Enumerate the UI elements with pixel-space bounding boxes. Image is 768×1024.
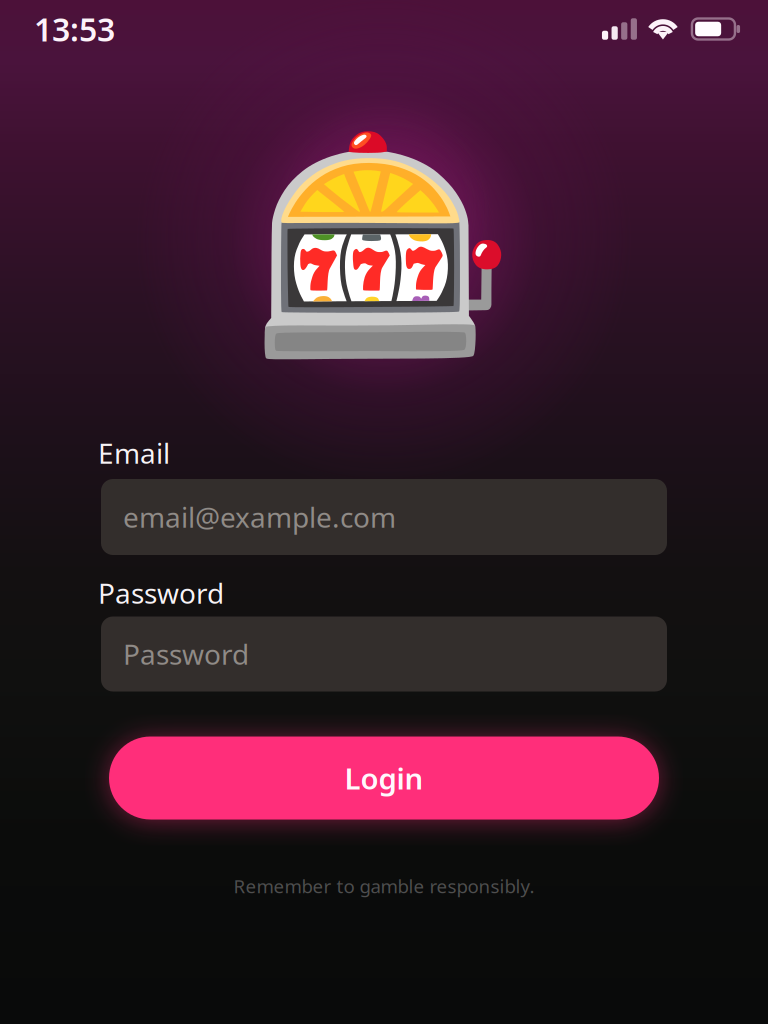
staticText: Email <box>98 434 170 472</box>
staticText: 13:53 <box>34 8 115 50</box>
staticText: email@example.com <box>123 498 396 536</box>
staticText: 🎰 <box>251 125 517 369</box>
button[interactable]: Password <box>101 616 667 691</box>
staticText: Login <box>344 758 423 797</box>
staticText: Remember to gamble responsibly. <box>233 874 534 898</box>
staticText: Password <box>98 574 224 612</box>
button[interactable]: email@example.com <box>101 479 667 555</box>
staticText: Password <box>123 635 249 673</box>
button[interactable]: Login <box>109 736 659 819</box>
